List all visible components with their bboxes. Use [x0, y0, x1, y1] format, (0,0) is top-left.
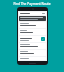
- button[interactable]: [19, 29, 46, 35]
- button[interactable]: [19, 12, 46, 15]
- button[interactable]: [19, 43, 46, 49]
- button[interactable]: Select route: [19, 36, 46, 42]
- staticText: Find The Payment Route: [13, 2, 51, 6]
- button[interactable]: [19, 22, 46, 28]
- button[interactable]: [19, 16, 46, 21]
- button[interactable]: Select route: [41, 37, 45, 41]
- button[interactable]: [19, 57, 46, 60]
- button[interactable]: [19, 50, 46, 56]
